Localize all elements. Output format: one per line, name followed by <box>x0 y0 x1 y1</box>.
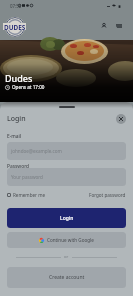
staticText: 07:58 <box>10 3 22 9</box>
staticText: Your password <box>11 174 43 180</box>
button[interactable]: Continue with Google <box>7 232 126 248</box>
staticText: johndoe@example.com <box>11 148 62 154</box>
button[interactable]: Your password <box>7 168 126 186</box>
button[interactable]: Login <box>7 208 126 228</box>
button[interactable]: Create account <box>7 267 126 288</box>
staticText: Login <box>7 114 26 124</box>
button[interactable]: Remember me <box>7 192 46 198</box>
button[interactable]: Account <box>98 20 110 32</box>
staticText: Remember me <box>13 192 46 198</box>
staticText: E-mail <box>7 133 22 140</box>
staticText: DUDES <box>4 23 26 30</box>
staticText: Password <box>7 163 30 170</box>
staticText: Create account <box>49 274 85 281</box>
staticText: Opens at 17:00 <box>12 84 45 90</box>
button[interactable]: Forgot password <box>89 192 126 198</box>
button[interactable]: Dudes logo <box>0 12 29 41</box>
button[interactable]: Close <box>116 114 126 124</box>
button[interactable]: Menu <box>113 20 125 32</box>
staticText: Login <box>60 215 74 222</box>
staticText: Dudes <box>5 72 33 84</box>
button[interactable]: johndoe@example.com <box>7 142 126 160</box>
staticText: or <box>64 254 69 260</box>
staticText: Continue with Google <box>47 237 94 243</box>
